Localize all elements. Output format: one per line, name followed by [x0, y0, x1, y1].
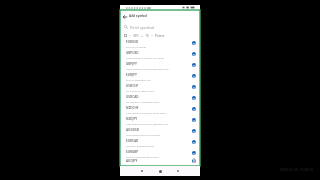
staticText: + — [141, 33, 143, 38]
staticText: New Zealand Dollar vs Japanese Yen — [126, 122, 169, 125]
button[interactable]: GBPJPY — [120, 61, 200, 72]
button[interactable]: Select all — [124, 34, 127, 37]
button[interactable]: Selected — [192, 52, 196, 56]
button[interactable]: NZDCHF — [120, 105, 200, 116]
button[interactable]: EURCAD — [120, 138, 200, 149]
staticText: 2020-07-05 10:48:18 — [280, 167, 313, 172]
staticText: Add symbol — [129, 14, 148, 18]
staticText: Euro vs Japanese Yen — [126, 78, 151, 81]
staticText: EURCAD — [126, 139, 139, 143]
staticText: Find symbol — [130, 24, 155, 30]
staticText: NZDJPY — [126, 117, 138, 121]
staticText: GBPUSD — [126, 51, 139, 55]
button[interactable]: USDCHF — [120, 83, 200, 94]
staticText: 301 — [133, 33, 139, 38]
staticText: ~ — [151, 33, 153, 38]
button[interactable]: GBPUSD — [120, 50, 200, 61]
staticText: Great Britain Pound vs Japanese Yen — [126, 67, 169, 70]
button[interactable]: ~ — [129, 33, 131, 38]
staticText: EURJPY — [126, 73, 137, 77]
staticText: US Dollar vs Canadian Dollar — [126, 100, 160, 103]
button[interactable]: EURJPY — [120, 72, 200, 83]
button[interactable]: Prime — [155, 33, 165, 38]
button[interactable]: ~ — [151, 33, 153, 38]
staticText: Prime — [155, 33, 165, 38]
staticText: ~ — [129, 33, 131, 38]
staticText: AUDUSD — [126, 128, 139, 132]
staticText: AUDJPY — [126, 159, 138, 163]
button[interactable]: Selected — [192, 140, 196, 144]
button[interactable]: Selected — [192, 96, 196, 100]
button[interactable]: 15 — [145, 33, 149, 38]
button[interactable]: Selected — [192, 74, 196, 78]
button[interactable]: Selected — [192, 41, 196, 45]
button[interactable]: Selected — [192, 107, 196, 111]
staticText: USDCHF — [126, 84, 139, 88]
button[interactable]: Selected — [192, 63, 196, 67]
button[interactable]: Back — [121, 13, 128, 20]
button[interactable]: + — [141, 33, 143, 38]
button[interactable]: Selected — [192, 151, 196, 155]
button[interactable]: EURUSD — [120, 39, 200, 50]
button[interactable]: AUDJPY — [120, 160, 200, 166]
button[interactable]: Selected — [192, 85, 196, 89]
staticText: Australian Dollar vs US Dollar — [126, 133, 161, 136]
button[interactable]: Recent apps — [174, 167, 182, 175]
staticText: NZDCHF — [126, 106, 139, 110]
button[interactable]: NZDJPY — [120, 116, 200, 127]
button[interactable]: Selected — [192, 118, 196, 122]
button[interactable]: Find symbol — [120, 22, 200, 31]
button[interactable]: EURGBP — [120, 149, 200, 160]
button[interactable]: Selected — [192, 129, 196, 133]
staticText: GBPJPY — [126, 62, 137, 66]
staticText: EURUSD — [126, 40, 139, 44]
staticText: 15 — [145, 33, 149, 38]
button[interactable]: USDCAD — [120, 94, 200, 105]
button[interactable]: Selected — [192, 159, 196, 163]
staticText: Great Britain Pound vs US Dollar — [126, 56, 164, 59]
staticText: Euro vs Canadian Dollar — [126, 144, 154, 147]
staticText: EURGBP — [126, 150, 139, 154]
button[interactable]: AUDUSD — [120, 127, 200, 138]
button[interactable]: Home — [156, 167, 164, 175]
button[interactable]: Back — [138, 167, 146, 175]
staticText: Euro vs Great Britain Pound — [126, 155, 159, 158]
button[interactable]: 301 — [133, 33, 139, 38]
staticText: Euro vs US Dollar — [126, 45, 147, 48]
staticText: USDCAD — [126, 95, 139, 99]
staticText: New Zealand Dollar vs Swiss Franc — [126, 111, 167, 114]
staticText: US Dollar vs Swiss Franc — [126, 89, 155, 92]
